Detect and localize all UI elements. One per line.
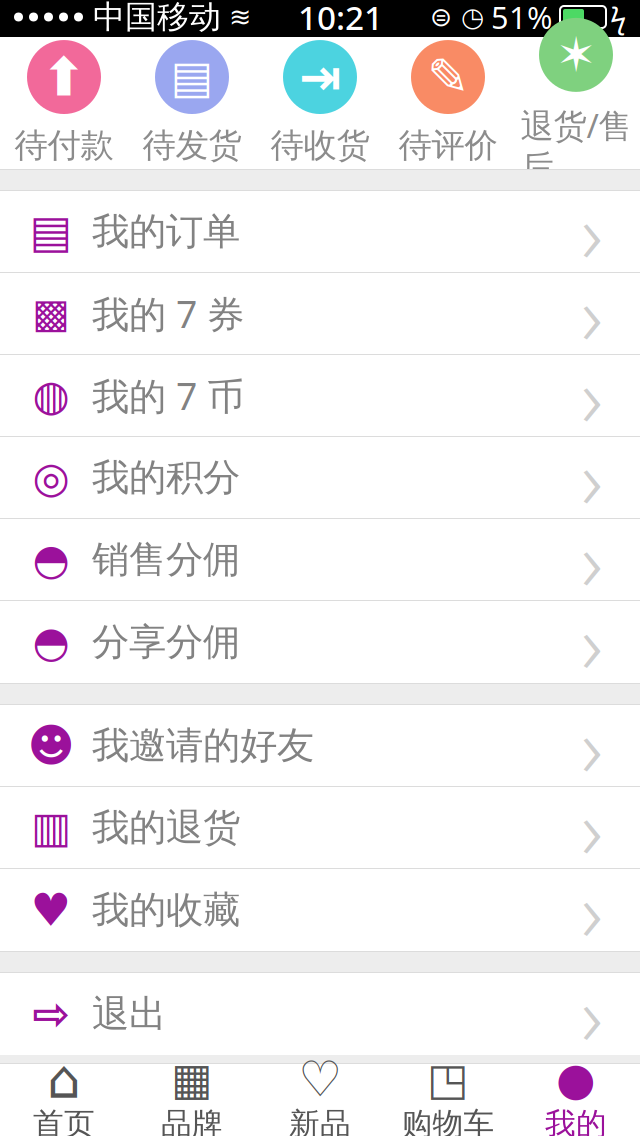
button[interactable]: ▦: [128, 1064, 256, 1136]
staticText: 中国移动: [93, 0, 221, 37]
staticText: 待评价: [398, 125, 497, 166]
staticText: 销售分佣: [92, 537, 240, 582]
staticText: 待付款: [14, 125, 113, 166]
button[interactable]: ♥: [0, 869, 640, 951]
button[interactable]: ✶: [512, 37, 640, 169]
staticText: 退出: [92, 991, 166, 1037]
staticText: ♡: [298, 1051, 342, 1107]
staticText: ϟ: [610, 0, 626, 36]
staticText: ⌂: [47, 1049, 81, 1109]
staticText: 我的退货: [92, 805, 240, 850]
staticText: ▥: [31, 803, 71, 852]
button[interactable]: ♡: [256, 1064, 384, 1136]
staticText: 我的积分: [92, 455, 240, 500]
staticText: ⬆: [41, 47, 86, 107]
staticText: ◎: [32, 453, 69, 502]
staticText: 品牌: [161, 1105, 223, 1136]
staticText: ▦: [171, 1054, 213, 1104]
staticText: ›: [581, 423, 603, 532]
staticText: 退货/售后: [520, 103, 631, 188]
staticText: ⇨: [32, 988, 70, 1040]
button[interactable]: ◳: [384, 1064, 512, 1136]
staticText: 我邀请的好友: [92, 723, 314, 768]
button[interactable]: ◓: [0, 601, 640, 683]
staticText: ›: [581, 505, 603, 614]
button[interactable]: ⇥: [256, 37, 384, 169]
staticText: ›: [581, 959, 603, 1069]
staticText: ›: [581, 341, 603, 450]
button[interactable]: ◎: [0, 437, 640, 519]
button[interactable]: ⬆: [0, 37, 128, 169]
button[interactable]: ✎: [384, 37, 512, 169]
staticText: 我的: [545, 1105, 607, 1136]
staticText: 待发货: [142, 125, 241, 166]
staticText: 我的 7 券: [92, 289, 244, 338]
staticText: 待收货: [270, 125, 369, 166]
button[interactable]: ▥: [0, 787, 640, 869]
button[interactable]: ▩: [0, 273, 640, 355]
staticText: 购物车: [401, 1105, 494, 1136]
staticText: ◷: [461, 2, 484, 32]
staticText: 10:21: [298, 0, 383, 39]
staticText: ›: [581, 587, 603, 697]
staticText: ▤: [170, 51, 213, 103]
staticText: 我的收藏: [92, 887, 240, 933]
staticText: 我的 7 币: [92, 371, 244, 420]
staticText: ✎: [427, 48, 469, 106]
button[interactable]: ⇨: [0, 973, 640, 1055]
staticText: ▤: [29, 206, 72, 257]
button[interactable]: ◓: [0, 519, 640, 601]
staticText: ◓: [32, 535, 69, 584]
button[interactable]: ▤: [128, 37, 256, 169]
button[interactable]: ▤: [0, 191, 640, 273]
staticText: ♥: [30, 884, 71, 936]
button[interactable]: ⌂: [0, 1064, 128, 1136]
staticText: ⊜: [430, 2, 452, 32]
staticText: ✶: [556, 28, 596, 82]
staticText: 我的订单: [92, 209, 240, 254]
staticText: ◍: [32, 371, 69, 420]
staticText: ⇥: [299, 48, 341, 106]
staticText: ›: [581, 773, 603, 882]
staticText: 首页: [33, 1105, 95, 1136]
staticText: ☻: [27, 720, 74, 771]
staticText: 分享分佣: [92, 619, 240, 665]
button[interactable]: ◍: [0, 355, 640, 437]
staticText: 51%: [491, 0, 552, 37]
staticText: ›: [581, 177, 603, 286]
button[interactable]: ●: [512, 1064, 640, 1136]
staticText: ◓: [32, 618, 69, 666]
button[interactable]: ☻: [0, 705, 640, 787]
staticText: ›: [581, 855, 603, 965]
staticText: ›: [581, 259, 603, 368]
staticText: ›: [581, 691, 603, 800]
staticText: ≋: [229, 2, 251, 32]
staticText: ●: [556, 1053, 596, 1105]
staticText: ▩: [32, 291, 70, 336]
staticText: 新品: [289, 1105, 351, 1136]
staticText: ◳: [427, 1054, 469, 1104]
